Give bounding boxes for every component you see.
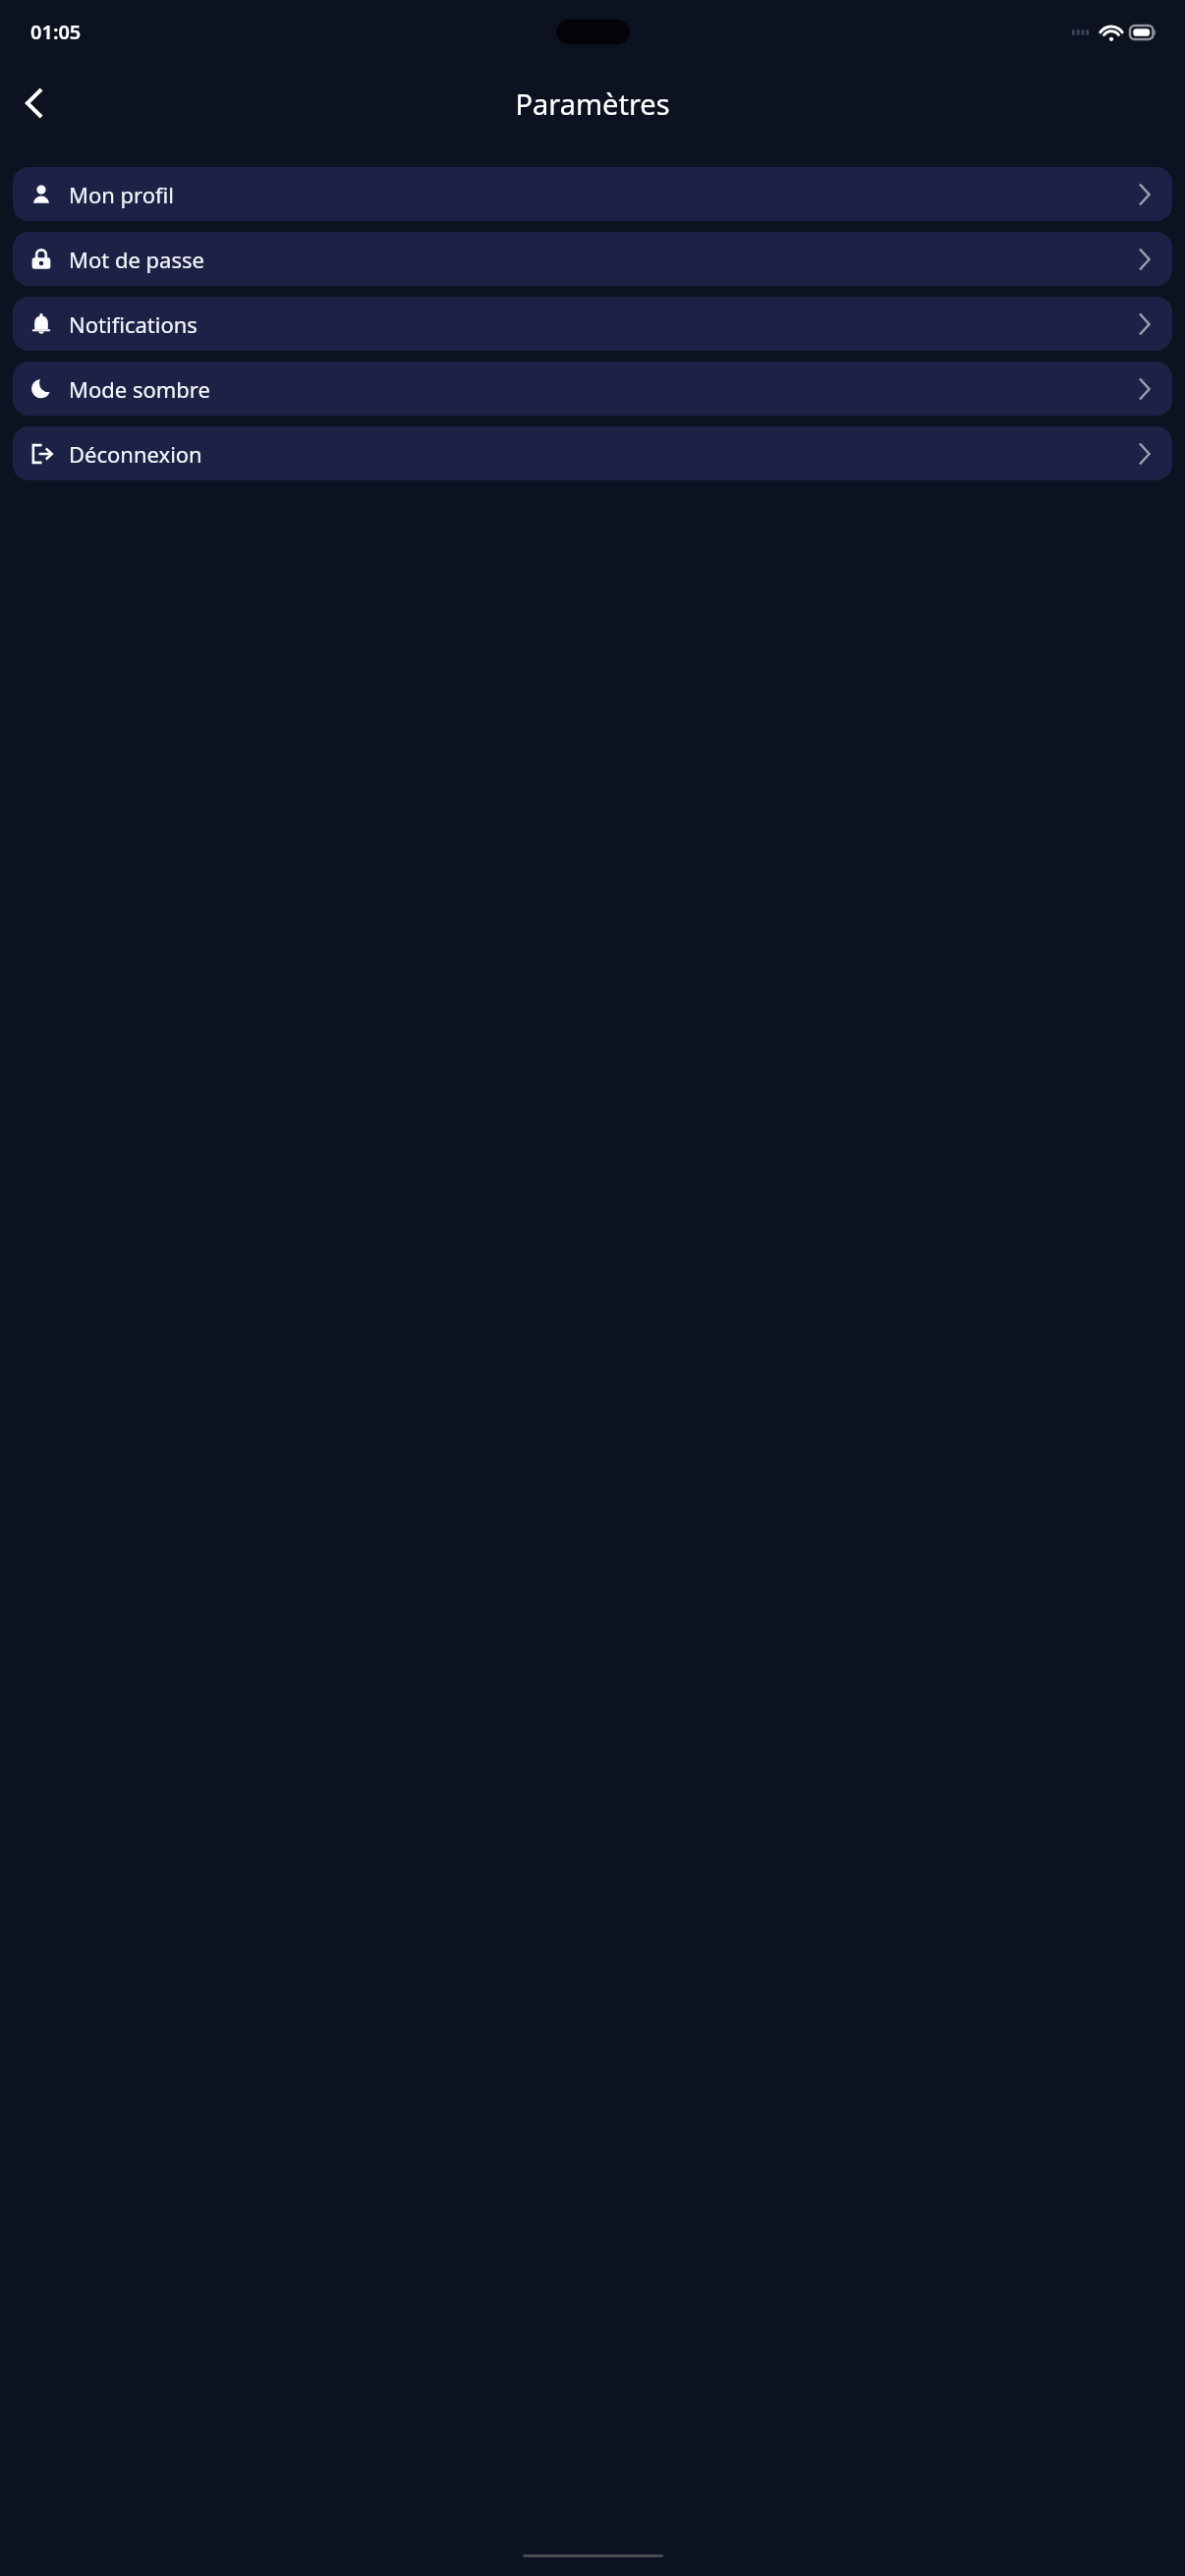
button[interactable]: Mot de passe: [13, 232, 1172, 286]
button[interactable]: Mon profil: [13, 167, 1172, 221]
staticText: Notifications: [69, 309, 197, 339]
button[interactable]: Retour: [6, 76, 61, 131]
staticText: 01:05: [30, 19, 82, 45]
staticText: Mon profil: [69, 180, 174, 209]
staticText: Déconnexion: [69, 439, 202, 469]
staticText: Mot de passe: [69, 245, 204, 274]
button[interactable]: Notifications: [13, 297, 1172, 351]
button[interactable]: Déconnexion: [13, 426, 1172, 480]
button[interactable]: Mode sombre: [13, 362, 1172, 416]
staticText: Mode sombre: [69, 374, 210, 404]
staticText: Paramètres: [515, 84, 670, 123]
